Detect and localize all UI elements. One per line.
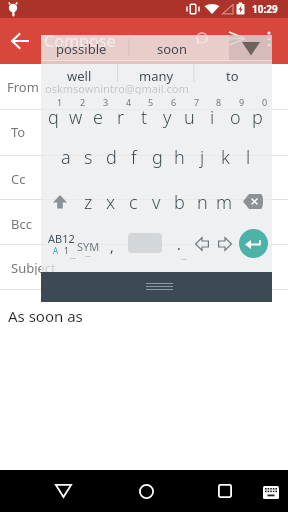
button[interactable]: d: [100, 145, 122, 170]
staticText: 3: [103, 96, 109, 107]
staticText: Compose: [44, 30, 116, 52]
button[interactable]: g: [146, 145, 168, 170]
button[interactable]: u: [178, 105, 200, 130]
staticText: 6: [171, 96, 177, 107]
button[interactable]: [214, 233, 235, 255]
staticText: j: [200, 145, 205, 170]
button[interactable]: c: [122, 190, 144, 215]
button[interactable]: to: [221, 66, 243, 85]
staticText: f: [131, 145, 137, 170]
staticText: 8: [216, 96, 222, 107]
staticText: e: [93, 105, 103, 130]
button[interactable]: t: [133, 105, 155, 130]
button[interactable]: p: [246, 105, 268, 130]
staticText: d: [106, 145, 117, 170]
staticText: 5: [148, 96, 154, 107]
button[interactable]: i: [201, 105, 223, 130]
staticText: ...: [70, 252, 76, 261]
staticText: b: [174, 190, 185, 215]
button[interactable]: [43, 470, 83, 512]
button[interactable]: f: [123, 145, 145, 170]
button[interactable]: [191, 233, 212, 255]
staticText: oskmsownintro@gmail.com: [45, 81, 189, 95]
button[interactable]: well: [59, 66, 99, 85]
button[interactable]: .: [170, 234, 188, 254]
staticText: Bcc: [11, 215, 32, 231]
button[interactable]: [242, 190, 264, 212]
button[interactable]: possible: [51, 39, 111, 58]
button[interactable]: Subject: [11, 259, 71, 275]
staticText: p: [252, 105, 263, 130]
button[interactable]: soon: [147, 39, 197, 58]
staticText: r: [117, 105, 125, 130]
button[interactable]: [41, 272, 272, 302]
button[interactable]: [49, 191, 71, 213]
button[interactable]: b: [168, 190, 190, 215]
button[interactable]: v: [145, 190, 167, 215]
staticText: ,: [110, 237, 114, 256]
button[interactable]: many: [135, 66, 177, 85]
staticText: t: [141, 105, 148, 130]
staticText: From: [7, 78, 39, 94]
staticText: s: [84, 145, 93, 170]
button[interactable]: From: [7, 78, 47, 94]
staticText: soon: [157, 40, 187, 58]
button[interactable]: x: [100, 190, 122, 215]
button[interactable]: z: [77, 190, 99, 215]
button[interactable]: j: [191, 145, 213, 170]
button[interactable]: m: [213, 190, 235, 215]
button[interactable]: o: [224, 105, 246, 130]
staticText: u: [184, 105, 195, 130]
button[interactable]: a: [55, 145, 77, 170]
button[interactable]: ,: [103, 236, 121, 256]
button[interactable]: e: [87, 105, 109, 130]
staticText: To: [11, 123, 26, 139]
staticText: 10:29: [252, 2, 278, 16]
staticText: A: [53, 245, 59, 256]
staticText: z: [84, 190, 93, 215]
staticText: n: [197, 190, 208, 215]
staticText: possible: [56, 40, 107, 58]
button[interactable]: Cc: [11, 170, 51, 186]
staticText: AB12: [48, 231, 75, 244]
staticText: 7: [194, 96, 200, 107]
button[interactable]: h: [168, 145, 190, 170]
staticText: y: [163, 105, 172, 130]
button[interactable]: k: [214, 145, 236, 170]
staticText: v: [152, 190, 161, 215]
button[interactable]: n: [191, 190, 213, 215]
button[interactable]: s: [77, 145, 99, 170]
staticText: Subject: [11, 259, 56, 275]
staticText: o: [230, 105, 241, 130]
button[interactable]: y: [156, 105, 178, 130]
button[interactable]: AB12: [45, 231, 77, 244]
staticText: h: [174, 145, 185, 170]
staticText: 1: [64, 245, 69, 256]
button[interactable]: [239, 229, 268, 258]
button[interactable]: Bcc: [11, 215, 51, 231]
staticText: i: [210, 105, 215, 130]
button[interactable]: SYM: [74, 239, 102, 252]
button[interactable]: w: [65, 105, 87, 130]
button[interactable]: q: [42, 105, 64, 130]
staticText: m: [216, 190, 233, 215]
staticText: 4: [126, 96, 132, 107]
button[interactable]: l: [237, 145, 259, 170]
button[interactable]: To: [11, 123, 51, 139]
staticText: 0: [262, 96, 268, 107]
staticText: c: [129, 190, 138, 215]
staticText: w: [69, 105, 83, 130]
button[interactable]: [205, 470, 245, 512]
button[interactable]: [126, 470, 166, 512]
staticText: l: [246, 145, 251, 170]
staticText: SYM: [77, 239, 100, 252]
staticText: many: [139, 67, 174, 85]
button[interactable]: [4, 25, 36, 57]
button[interactable]: r: [110, 105, 132, 130]
staticText: ...: [181, 253, 187, 262]
button[interactable]: [256, 480, 286, 504]
staticText: q: [48, 105, 59, 130]
staticText: well: [67, 67, 92, 85]
button[interactable]: [229, 35, 272, 61]
